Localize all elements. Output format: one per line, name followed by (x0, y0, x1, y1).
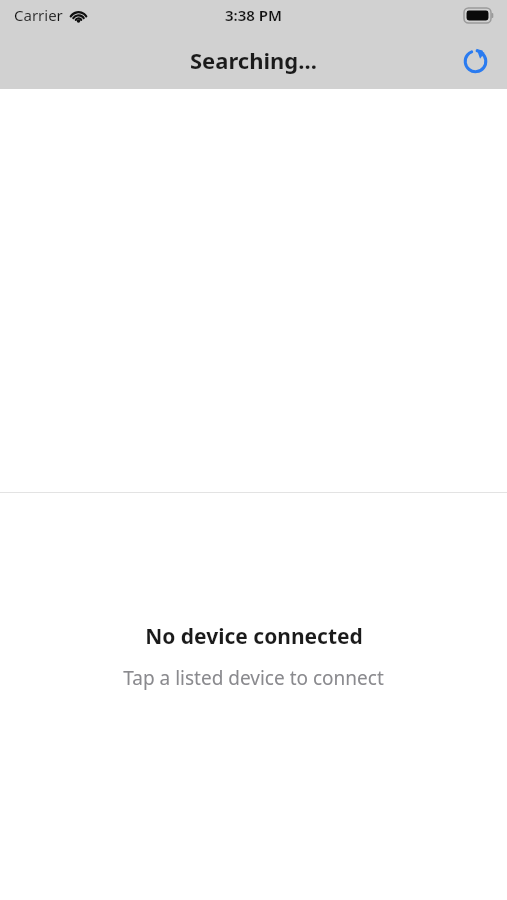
staticText: Carrier (14, 5, 63, 25)
staticText: Searching... (190, 45, 317, 75)
button[interactable]: Refresh (453, 38, 497, 82)
staticText: 3:38 PM (225, 5, 282, 25)
staticText: No device connected (145, 622, 363, 651)
staticText: Tap a listed device to connect (123, 665, 384, 691)
